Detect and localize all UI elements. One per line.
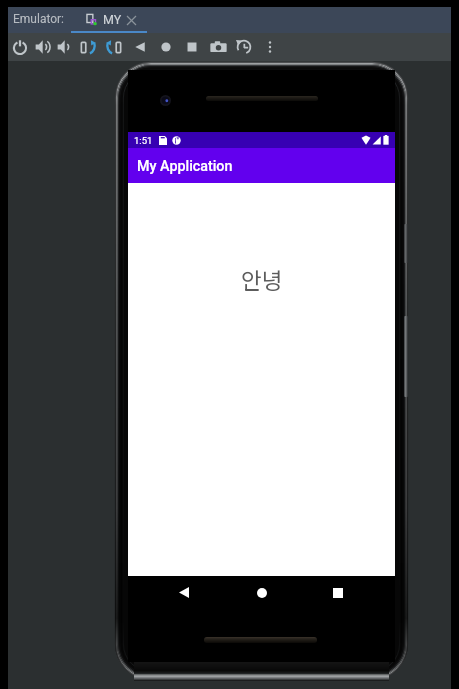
button[interactable]: More — [258, 34, 281, 60]
staticText: 안녕 — [241, 263, 283, 296]
button[interactable]: History — [232, 34, 255, 60]
staticText: 1:51 — [134, 135, 153, 146]
button[interactable]: Volume down — [53, 34, 76, 60]
button[interactable]: Overview — [323, 578, 352, 607]
staticText: Emulator: — [13, 12, 65, 26]
button[interactable]: Back — [128, 34, 151, 60]
button[interactable]: Home — [154, 34, 177, 60]
button[interactable]: Volume up — [31, 34, 54, 60]
button[interactable]: Overview — [180, 34, 203, 60]
staticText: MY — [103, 12, 122, 27]
button[interactable]: Screenshot — [207, 34, 230, 60]
button[interactable]: Back — [169, 578, 198, 607]
button[interactable]: My Application — [128, 148, 395, 183]
button[interactable]: Home — [247, 578, 276, 607]
button[interactable]: MY — [71, 7, 147, 33]
button[interactable]: Power — [8, 34, 31, 60]
button[interactable]: Rotate left — [77, 34, 100, 60]
staticText: My Application — [137, 158, 233, 175]
button[interactable]: Rotate right — [102, 34, 125, 60]
